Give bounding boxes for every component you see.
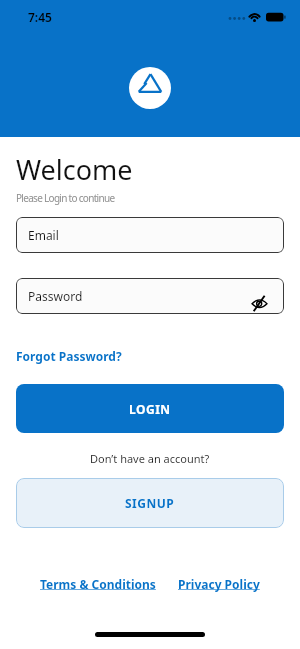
button[interactable]: Terms & Conditions bbox=[40, 576, 156, 592]
button[interactable]: Forgot Password? bbox=[16, 348, 122, 364]
staticText: 7:45 bbox=[28, 9, 52, 25]
button[interactable]: Email bbox=[16, 217, 284, 253]
staticText: LOGIN bbox=[129, 401, 171, 417]
staticText: Email bbox=[28, 227, 59, 243]
staticText: SIGNUP bbox=[125, 495, 175, 511]
staticText: Please Login to continue bbox=[16, 191, 115, 205]
button[interactable]: Privacy Policy bbox=[178, 576, 260, 592]
staticText: Welcome bbox=[16, 151, 133, 188]
staticText: Password bbox=[28, 288, 83, 304]
button[interactable] bbox=[249, 293, 269, 313]
button[interactable]: Password bbox=[16, 278, 284, 314]
staticText: Don’t have an account? bbox=[90, 451, 210, 466]
button[interactable]: LOGIN bbox=[16, 384, 284, 433]
button[interactable]: SIGNUP bbox=[16, 478, 284, 528]
